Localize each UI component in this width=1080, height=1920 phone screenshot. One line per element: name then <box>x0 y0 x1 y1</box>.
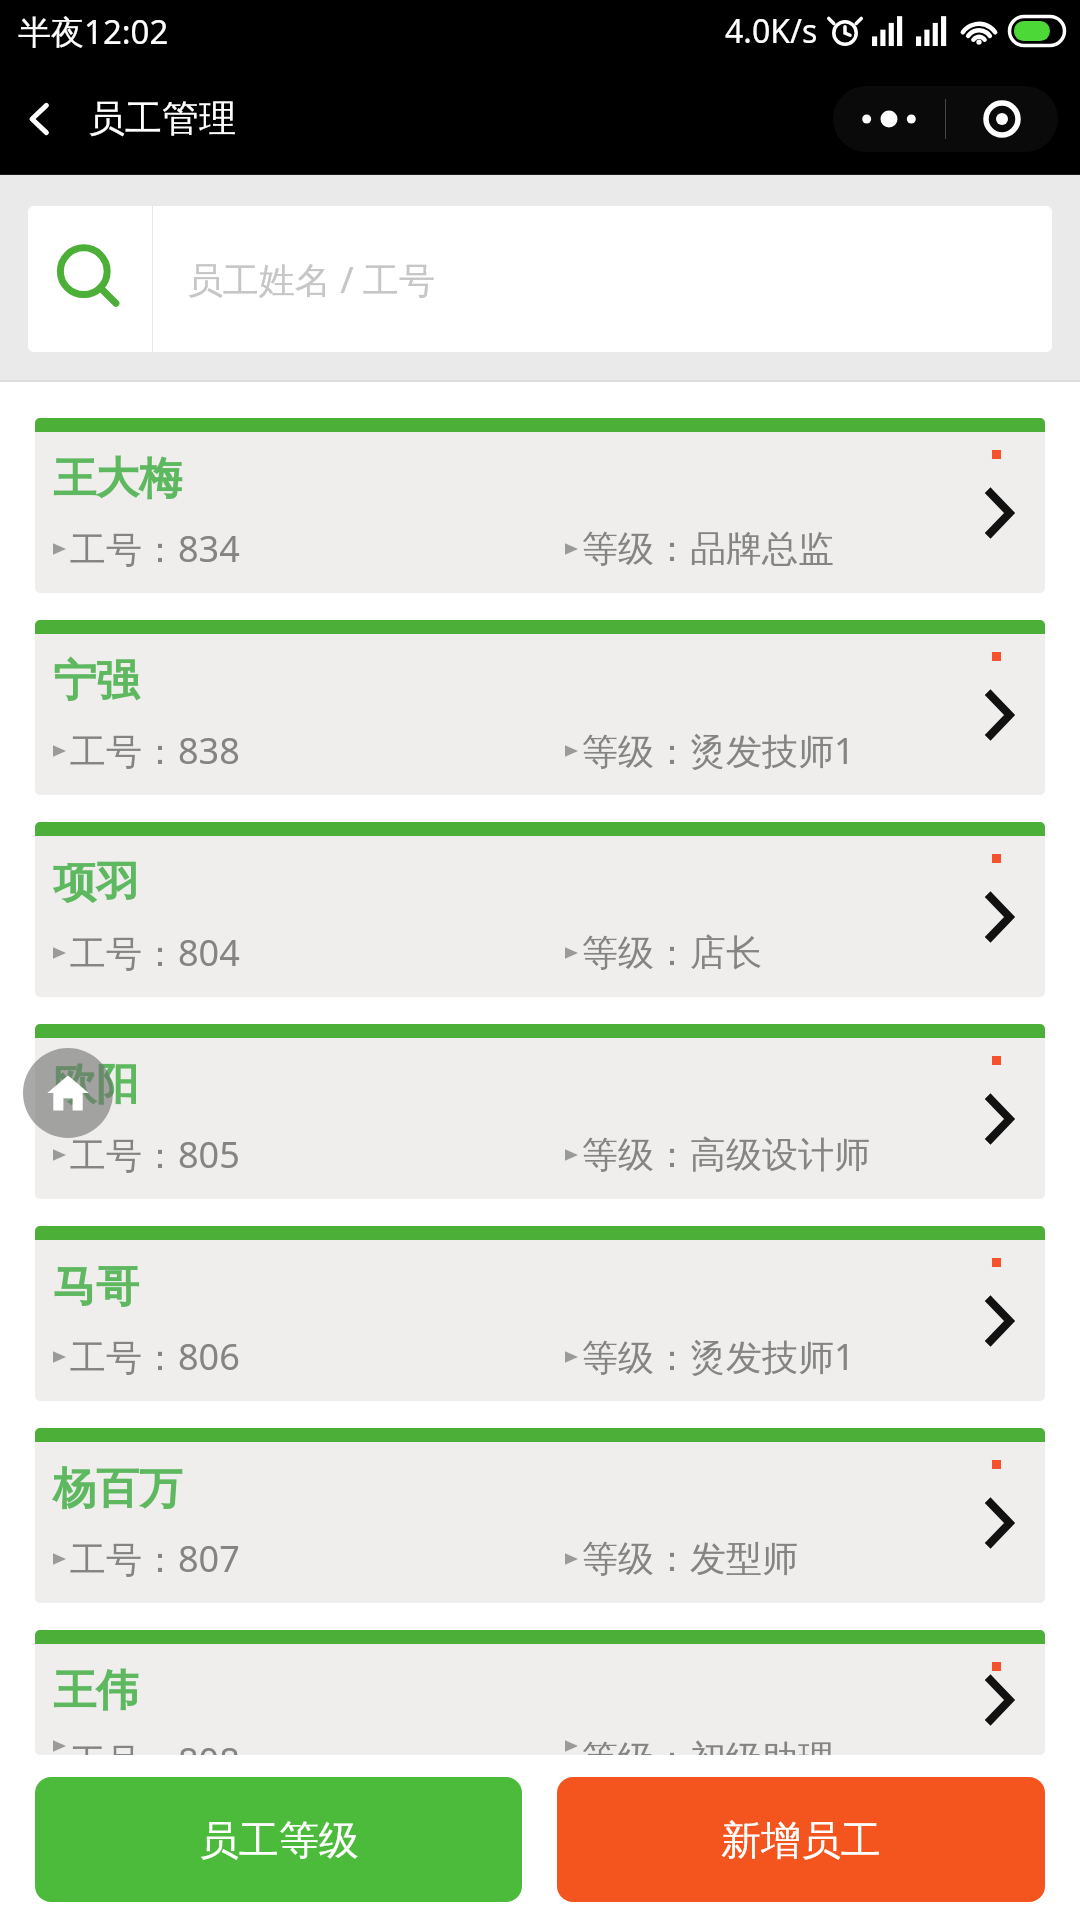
staticText: 工号：805 <box>70 1130 240 1179</box>
staticText: 等级：初级助理 <box>582 1736 834 1755</box>
staticText: 等级：烫发技师1 <box>582 726 855 775</box>
staticText: 马哥 <box>53 1260 139 1314</box>
staticText: 项羽 <box>53 856 139 910</box>
button[interactable]: Close <box>946 86 1058 152</box>
staticText: 工号：806 <box>70 1332 240 1381</box>
staticText: 等级：烫发技师1 <box>582 1332 855 1381</box>
staticText: 工号：804 <box>70 928 240 977</box>
staticText: 王大梅 <box>53 452 182 506</box>
staticText: 等级：品牌总监 <box>582 526 834 571</box>
button[interactable]: 宁强 <box>35 620 1045 795</box>
staticText: 王伟 <box>53 1664 139 1718</box>
staticText: 工号：808 <box>70 1736 240 1755</box>
staticText: 等级：店长 <box>582 930 762 975</box>
button[interactable]: 员工等级 <box>35 1777 522 1902</box>
button[interactable]: 王伟 <box>35 1630 1045 1755</box>
staticText: 工号：807 <box>70 1534 240 1583</box>
button[interactable]: 欧阳 <box>35 1024 1045 1199</box>
staticText: 杨百万 <box>53 1462 182 1516</box>
staticText: 工号：834 <box>70 524 240 573</box>
staticText: 员工等级 <box>199 1815 359 1865</box>
staticText: 半夜12:02 <box>18 9 169 54</box>
staticText: 新增员工 <box>721 1815 881 1865</box>
staticText: 宁强 <box>53 654 139 708</box>
button[interactable]: 新增员工 <box>557 1777 1045 1902</box>
button[interactable]: 杨百万 <box>35 1428 1045 1603</box>
button[interactable]: 员工姓名 / 工号 <box>28 206 1052 352</box>
button[interactable]: 项羽 <box>35 822 1045 997</box>
staticText: 4.0K/s <box>725 9 818 53</box>
button[interactable]: More <box>833 86 945 152</box>
staticText: 员工管理 <box>88 95 236 142</box>
button[interactable]: 马哥 <box>35 1226 1045 1401</box>
staticText: 欧阳 <box>53 1058 139 1112</box>
button[interactable]: Home <box>23 1048 113 1138</box>
staticText: 员工姓名 / 工号 <box>187 255 436 304</box>
staticText: 等级：高级设计师 <box>582 1132 870 1177</box>
button[interactable]: 王大梅 <box>35 418 1045 593</box>
staticText: 等级：发型师 <box>582 1536 798 1581</box>
staticText: 工号：838 <box>70 726 240 775</box>
button[interactable]: Back <box>8 87 72 151</box>
